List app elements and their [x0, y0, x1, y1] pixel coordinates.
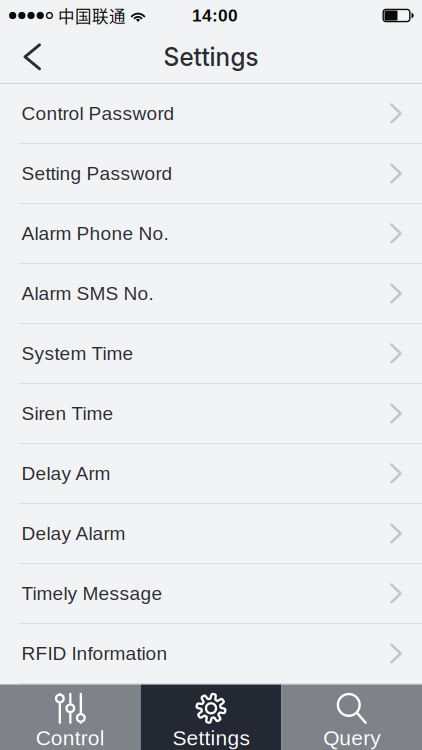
button[interactable]: Settings	[141, 684, 281, 750]
staticText: Settings	[163, 42, 258, 72]
staticText: Settings	[172, 726, 249, 750]
button[interactable]: Delay Arm	[0, 444, 422, 504]
button[interactable]: Delay Alarm	[0, 504, 422, 564]
staticText: 14:00	[192, 6, 238, 25]
staticText: Query	[323, 726, 380, 750]
staticText: System Time	[21, 343, 133, 364]
button[interactable]: System Time	[0, 324, 422, 384]
staticText: Timely Message	[21, 583, 162, 604]
button[interactable]: Setting Password	[0, 144, 422, 204]
button[interactable]: RFID Information	[0, 624, 422, 684]
button[interactable]: Alarm Phone No.	[0, 204, 422, 264]
button[interactable]: Timely Message	[0, 564, 422, 624]
staticText: Delay Alarm	[21, 523, 125, 544]
staticText: Control	[36, 726, 105, 750]
staticText: Siren Time	[21, 403, 113, 424]
button[interactable]: Control Password	[0, 84, 422, 144]
button[interactable]: Control	[0, 684, 141, 750]
button[interactable]: Query	[281, 684, 422, 750]
staticText: 中国联通	[58, 3, 126, 27]
staticText: RFID Information	[21, 643, 167, 664]
staticText: Delay Arm	[21, 463, 110, 484]
staticText: Alarm SMS No.	[21, 283, 153, 304]
staticText: Alarm Phone No.	[21, 223, 168, 244]
button[interactable]: Siren Time	[0, 384, 422, 444]
staticText: Setting Password	[21, 163, 172, 184]
staticText: Control Password	[21, 103, 174, 124]
button[interactable]: Alarm SMS No.	[0, 264, 422, 324]
button[interactable]: Back	[0, 35, 65, 79]
